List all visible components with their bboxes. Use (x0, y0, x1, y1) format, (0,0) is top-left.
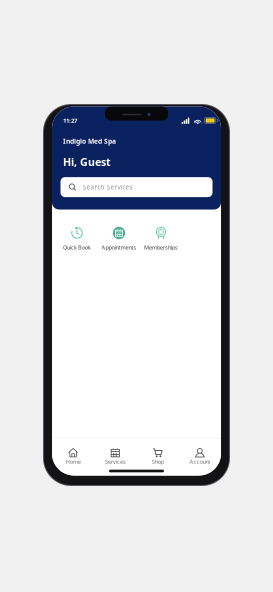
button[interactable]: Memberships (140, 226, 182, 251)
button[interactable]: Home (52, 448, 94, 465)
staticText: 11:27 (63, 116, 77, 125)
button[interactable]: Account (179, 448, 221, 465)
staticText: Hi, Guest (63, 155, 111, 169)
button[interactable]: Quick Book (56, 226, 98, 251)
button[interactable]: Shop (136, 448, 179, 465)
staticText: Quick Book (63, 243, 91, 251)
staticText: Shop (152, 458, 164, 465)
button[interactable]: Services (94, 448, 136, 465)
staticText: Services (105, 458, 126, 465)
staticText: Account (189, 458, 210, 465)
staticText: Appointments (101, 243, 136, 251)
staticText: Search Services (82, 183, 132, 191)
staticText: Memberships (144, 243, 178, 251)
button[interactable]: Search Services (60, 177, 212, 197)
button[interactable]: Appointments (98, 226, 140, 251)
staticText: Indiglo Med Spa (63, 136, 116, 146)
staticText: Home (66, 458, 81, 465)
